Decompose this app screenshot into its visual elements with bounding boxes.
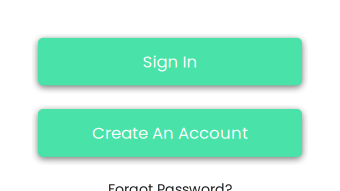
button[interactable]: Create An Account	[38, 109, 302, 157]
button[interactable]: Sign In	[38, 38, 302, 85]
button[interactable]: Forgot Password?	[108, 179, 232, 191]
staticText: Sign In	[142, 50, 197, 73]
staticText: Forgot Password?	[108, 179, 232, 191]
staticText: Create An Account	[92, 121, 248, 144]
